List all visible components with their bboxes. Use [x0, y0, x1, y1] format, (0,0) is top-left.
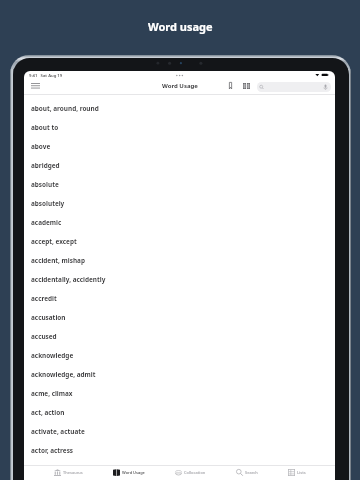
button[interactable]: accidentally, accidently — [24, 270, 335, 289]
staticText: acknowledge, admit — [31, 370, 96, 379]
staticText: accident, mishap — [31, 256, 85, 265]
button[interactable]: Lists — [278, 465, 316, 479]
staticText: Word Usage — [122, 470, 145, 475]
staticText: acknowledge — [31, 351, 74, 360]
staticText: accusation — [31, 313, 66, 322]
staticText: activate, actuate — [31, 427, 85, 436]
staticText: acme, climax — [31, 389, 73, 398]
button[interactable]: Thesaurus — [44, 465, 93, 479]
staticText: accidentally, accidently — [31, 275, 106, 284]
button[interactable]: accused — [24, 327, 335, 346]
staticText: accredit — [31, 294, 57, 303]
staticText: Word usage — [148, 19, 213, 34]
staticText: academic — [31, 218, 62, 227]
button[interactable]: accredit — [24, 289, 335, 308]
staticText: 9:41 Sat Aug 19 — [29, 73, 63, 79]
button[interactable]: actor, actress — [24, 441, 335, 460]
button[interactable]: Menu — [26, 79, 44, 93]
staticText: Search — [245, 470, 258, 475]
button[interactable]: Dictionary — [240, 79, 253, 92]
button[interactable]: about to — [24, 118, 335, 137]
button[interactable]: Bookmark — [224, 79, 237, 92]
staticText: act, action — [31, 408, 65, 417]
button[interactable]: acknowledge — [24, 346, 335, 365]
staticText: about to — [31, 123, 59, 132]
staticText: absolute — [31, 180, 59, 189]
button[interactable]: abridged — [24, 156, 335, 175]
button[interactable]: absolutely — [24, 194, 335, 213]
staticText: accused — [31, 332, 57, 341]
button[interactable]: accident, mishap — [24, 251, 335, 270]
staticText: Collocation — [184, 470, 206, 475]
staticText: abridged — [31, 161, 60, 170]
button[interactable]: Search — [257, 82, 331, 92]
button[interactable]: about, around, round — [24, 99, 335, 118]
staticText: accept, except — [31, 237, 77, 246]
button[interactable]: academic — [24, 213, 335, 232]
staticText: Thesaurus — [63, 470, 83, 475]
button[interactable]: activate, actuate — [24, 422, 335, 441]
button[interactable]: act, action — [24, 403, 335, 422]
staticText: Lists — [297, 470, 306, 475]
button[interactable]: Word Usage — [103, 465, 155, 479]
staticText: absolutely — [31, 199, 65, 208]
button[interactable]: acknowledge, admit — [24, 365, 335, 384]
staticText: actor, actress — [31, 446, 74, 455]
button[interactable]: above — [24, 137, 335, 156]
staticText: Word Usage — [162, 82, 198, 90]
staticText: about, around, round — [31, 104, 99, 113]
button[interactable]: Search — [226, 465, 268, 479]
button[interactable]: absolute — [24, 175, 335, 194]
button[interactable]: acme, climax — [24, 384, 335, 403]
button[interactable]: Collocation — [165, 465, 216, 479]
staticText: above — [31, 142, 51, 151]
button[interactable]: accusation — [24, 308, 335, 327]
button[interactable]: accept, except — [24, 232, 335, 251]
